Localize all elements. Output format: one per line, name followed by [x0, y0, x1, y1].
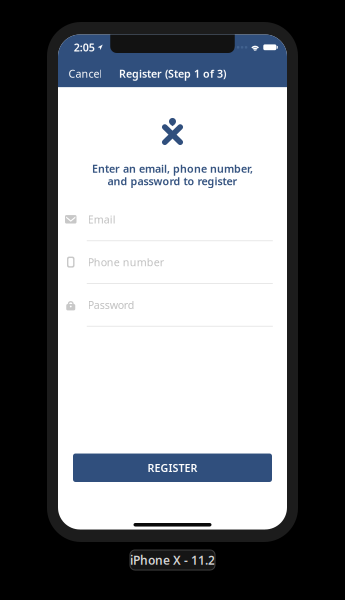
staticText: 2:05 [74, 40, 95, 54]
staticText: Register (Step 1 of 3) [119, 66, 226, 81]
staticText: Email [88, 212, 116, 226]
staticText: REGISTER [147, 461, 197, 475]
button[interactable]: REGISTER [73, 453, 272, 482]
button[interactable]: Cancel [58, 57, 110, 90]
staticText: and password to register [107, 174, 237, 188]
staticText: Password [88, 298, 135, 312]
staticText: Enter an email, phone number, [92, 161, 253, 176]
staticText: Phone number [88, 255, 164, 269]
staticText: Cancel [68, 66, 102, 81]
staticText: iPhone X - 11.2 [130, 552, 215, 568]
